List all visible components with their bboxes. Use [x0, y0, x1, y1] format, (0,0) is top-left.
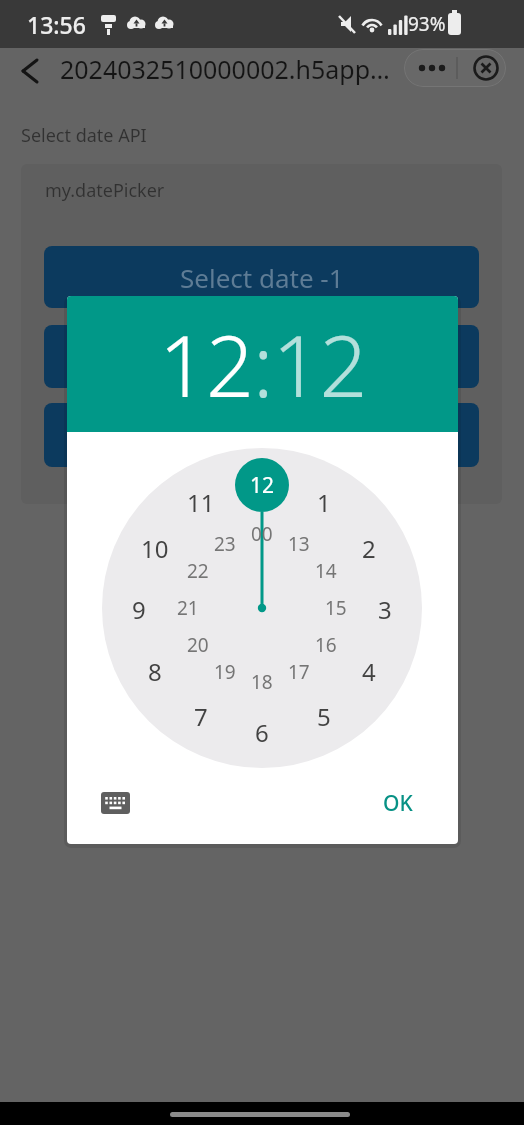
- staticText: 9: [132, 593, 146, 623]
- staticText: 23: [214, 531, 236, 557]
- staticText: 17: [288, 659, 310, 685]
- staticText: 20: [187, 632, 209, 658]
- staticText: 12: [250, 471, 275, 500]
- button[interactable]: [404, 49, 506, 87]
- staticText: 11: [187, 486, 215, 516]
- staticText: 12:12: [159, 307, 367, 421]
- staticText: 15: [325, 595, 347, 621]
- button[interactable]: OK: [367, 789, 429, 817]
- staticText: 16: [315, 632, 337, 658]
- staticText: 18: [251, 669, 273, 695]
- staticText: 19: [214, 659, 236, 685]
- staticText: 7: [194, 700, 208, 730]
- staticText: 2024032510000002.h5app…: [60, 52, 390, 86]
- staticText: 6: [255, 716, 269, 746]
- staticText: 13:56: [27, 9, 86, 39]
- staticText: Select date -1: [180, 260, 344, 295]
- staticText: 22: [187, 558, 209, 584]
- staticText: my.datePicker: [45, 178, 165, 203]
- staticText: 14: [315, 558, 337, 584]
- staticText: 93%: [408, 11, 446, 37]
- button[interactable]: Select date -1: [44, 246, 479, 308]
- staticText: OK: [383, 789, 413, 817]
- staticText: 4: [362, 655, 376, 685]
- staticText: 8: [148, 655, 162, 685]
- staticText: 21: [177, 595, 199, 621]
- staticText: 10: [141, 532, 169, 562]
- staticText: 2: [362, 532, 376, 562]
- staticText: 1: [317, 486, 331, 516]
- button[interactable]: [97, 788, 135, 818]
- button[interactable]: [44, 403, 479, 467]
- staticText: Select date API: [21, 123, 147, 148]
- staticText: 13: [288, 531, 310, 557]
- staticText: 5: [317, 700, 331, 730]
- staticText: 3: [378, 593, 392, 623]
- button[interactable]: [44, 325, 479, 388]
- staticText: 00: [251, 521, 273, 547]
